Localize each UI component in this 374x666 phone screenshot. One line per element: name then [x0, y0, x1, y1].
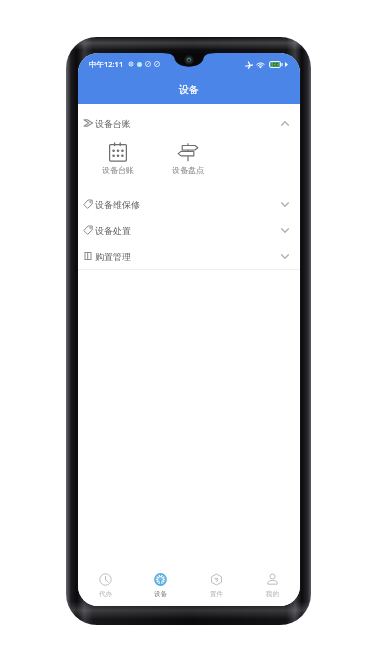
staticText: 置件: [210, 590, 223, 598]
button[interactable]: 设备盘点: [153, 140, 223, 177]
button[interactable]: 设备维保修: [78, 191, 300, 217]
staticText: 设备台账: [95, 118, 131, 129]
button[interactable]: 代办: [78, 564, 133, 606]
button[interactable]: 设备台账: [78, 110, 300, 136]
staticText: 设备处置: [95, 225, 131, 236]
staticText: 代办: [99, 590, 112, 598]
button[interactable]: 设备处置: [78, 217, 300, 243]
button[interactable]: 购置管理: [78, 243, 300, 269]
staticText: 设备维保修: [95, 199, 140, 210]
staticText: 设备: [179, 83, 199, 96]
staticText: 购置管理: [95, 251, 131, 262]
button[interactable]: 我的: [244, 564, 300, 606]
button[interactable]: 设备: [133, 564, 188, 606]
staticText: 设备: [154, 590, 167, 598]
staticText: 设备盘点: [172, 165, 204, 175]
staticText: 中午12:11: [89, 59, 124, 69]
button[interactable]: 设备台账: [83, 140, 153, 177]
staticText: 我的: [266, 590, 279, 598]
staticText: 设备台账: [102, 165, 134, 175]
button[interactable]: 置件: [188, 564, 244, 606]
